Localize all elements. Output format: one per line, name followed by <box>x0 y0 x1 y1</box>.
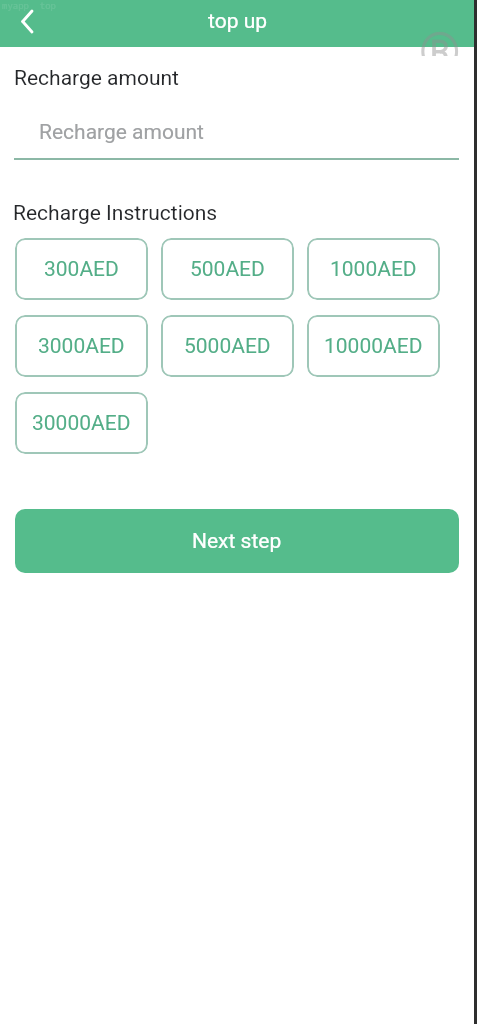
staticText: myapp top <box>2 0 57 11</box>
staticText: Recharge amount <box>14 66 179 91</box>
staticText: ® <box>419 21 461 56</box>
staticText: Next step <box>192 529 282 554</box>
button[interactable]: 5000AED <box>161 315 294 377</box>
button[interactable]: 300AED <box>15 238 148 300</box>
button[interactable]: Recharge amount input <box>14 104 459 160</box>
staticText: Recharge Instructions <box>13 201 218 226</box>
button[interactable]: 10000AED <box>307 315 440 377</box>
staticText: 30000AED <box>32 411 131 436</box>
button[interactable]: Next step <box>15 509 459 573</box>
button[interactable]: 1000AED <box>307 238 440 300</box>
staticText: 3000AED <box>38 334 125 359</box>
staticText: 5000AED <box>184 334 271 359</box>
staticText: 1000AED <box>330 257 417 282</box>
button[interactable]: 3000AED <box>15 315 148 377</box>
button[interactable]: Back <box>4 0 48 43</box>
staticText: 500AED <box>190 257 265 282</box>
staticText: Recharge amount <box>39 120 204 145</box>
staticText: top up <box>208 9 268 34</box>
button[interactable]: 30000AED <box>15 392 148 454</box>
staticText: 300AED <box>44 257 119 282</box>
button[interactable]: 500AED <box>161 238 294 300</box>
staticText: 10000AED <box>324 334 423 359</box>
